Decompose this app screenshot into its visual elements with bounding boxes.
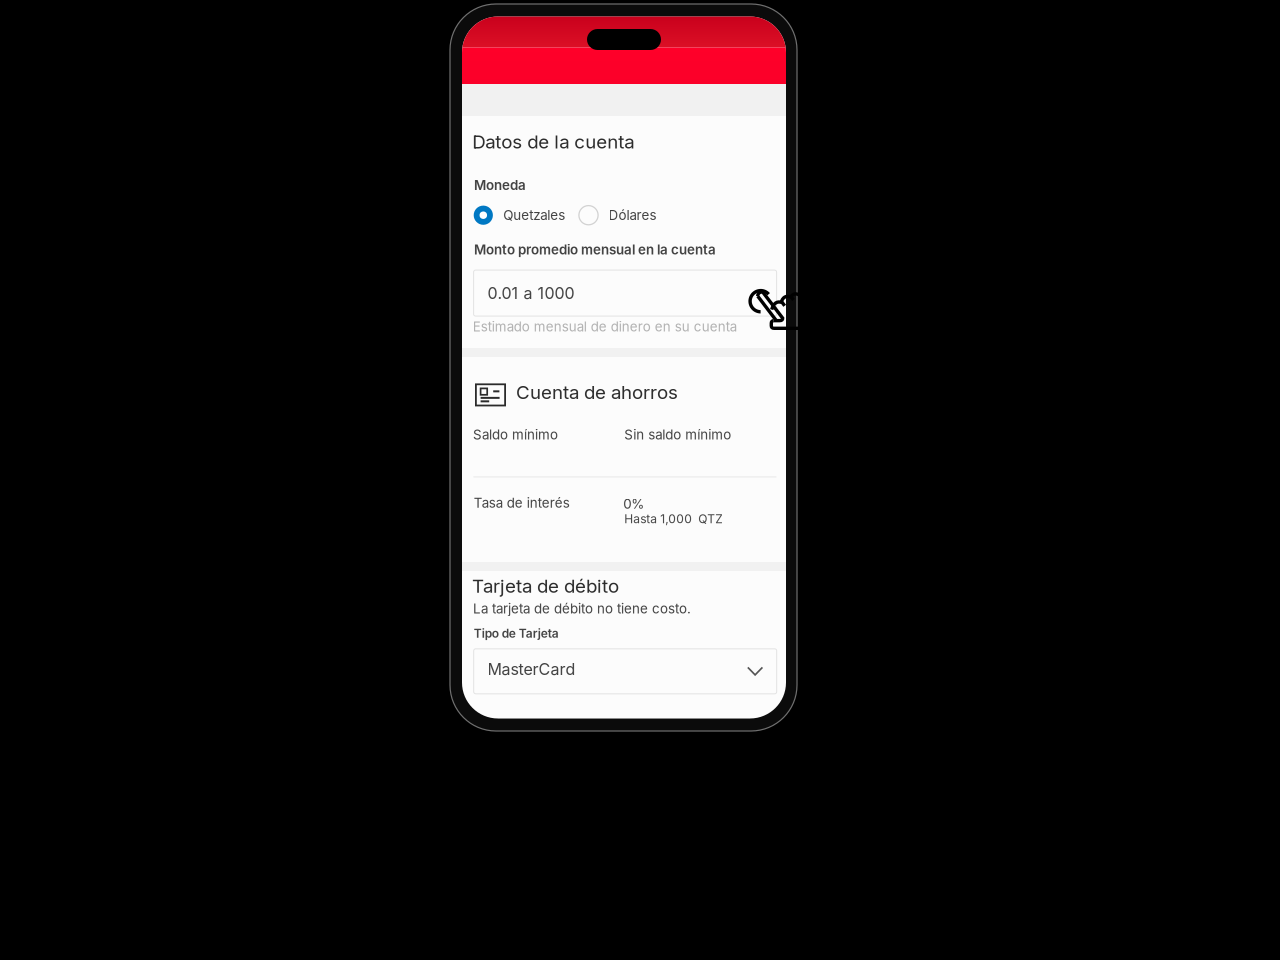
button[interactable]: MasterCard [474,649,777,694]
staticText: Estimado mensual de dinero en su cuenta [473,319,737,334]
button[interactable]: 0.01 a 1000 [474,270,777,316]
staticText: Tasa de interés [474,495,570,511]
staticText: 0% [623,496,644,512]
staticText: Sin saldo mínimo [624,427,731,443]
staticText: Saldo mínimo [473,427,558,443]
staticText: 0.01 a 1000 [487,284,574,303]
staticText: Hasta 1,000 QTZ [624,512,723,526]
staticText: La tarjeta de débito no tiene costo. [473,601,691,616]
staticText: Quetzales [503,207,565,223]
staticText: MasterCard [487,660,575,679]
staticText: Dólares [608,207,656,223]
button[interactable]: Quetzales [474,205,565,225]
staticText: Moneda [474,177,526,193]
staticText: Cuenta de ahorros [516,381,678,403]
button[interactable]: Dólares [579,205,656,225]
staticText: Monto promedio mensual en la cuenta [474,242,716,258]
staticText: Datos de la cuenta [472,131,634,153]
staticText: Tipo de Tarjeta [474,626,559,641]
staticText: Tarjeta de débito [472,575,619,597]
